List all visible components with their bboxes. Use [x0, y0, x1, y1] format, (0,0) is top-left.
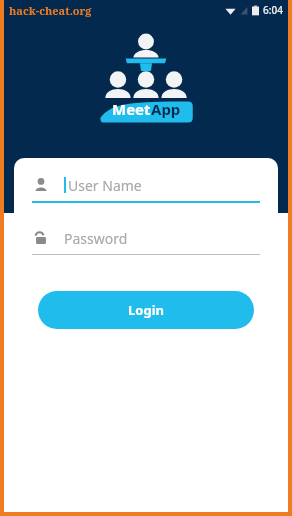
- staticText: Login: [128, 301, 164, 319]
- button[interactable]: User name: [32, 172, 260, 203]
- other: Password: [32, 229, 50, 247]
- staticText: 6:04: [263, 3, 283, 17]
- staticText: App: [151, 99, 181, 119]
- staticText: User Name: [68, 176, 142, 195]
- staticText: hack-cheat.org: [9, 3, 92, 18]
- other: User name: [32, 176, 50, 194]
- staticText: Meet: [112, 99, 151, 119]
- staticText: Password: [64, 229, 128, 248]
- button[interactable]: Password: [32, 225, 260, 255]
- button[interactable]: Login: [38, 291, 254, 329]
